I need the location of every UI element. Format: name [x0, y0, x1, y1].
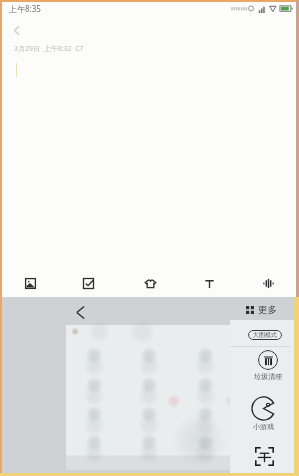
- staticText: 上午8:35: [9, 3, 41, 14]
- button[interactable]: Checklist: [75, 270, 101, 296]
- button[interactable]: Back: [70, 302, 90, 322]
- button[interactable]: 更多: [246, 304, 277, 316]
- button[interactable]: Text format: [196, 270, 222, 296]
- button[interactable]: Style: [137, 270, 163, 296]
- button[interactable]: 垃圾清理: [254, 350, 282, 381]
- button[interactable]: Back: [4, 18, 28, 42]
- button[interactable]: 小游戏: [252, 397, 275, 431]
- button[interactable]: Voice: [255, 270, 281, 296]
- staticText: 小游戏: [253, 422, 274, 431]
- button[interactable]: Scan: [255, 447, 274, 466]
- staticText: 3月29日 上午8:32 C7: [14, 44, 84, 54]
- staticText: 大图模式: [253, 331, 277, 339]
- staticText: 垃圾清理: [254, 372, 282, 381]
- button[interactable]: 大图模式: [248, 330, 282, 340]
- staticText: 更多: [258, 304, 277, 316]
- button[interactable]: Insert image: [17, 270, 43, 296]
